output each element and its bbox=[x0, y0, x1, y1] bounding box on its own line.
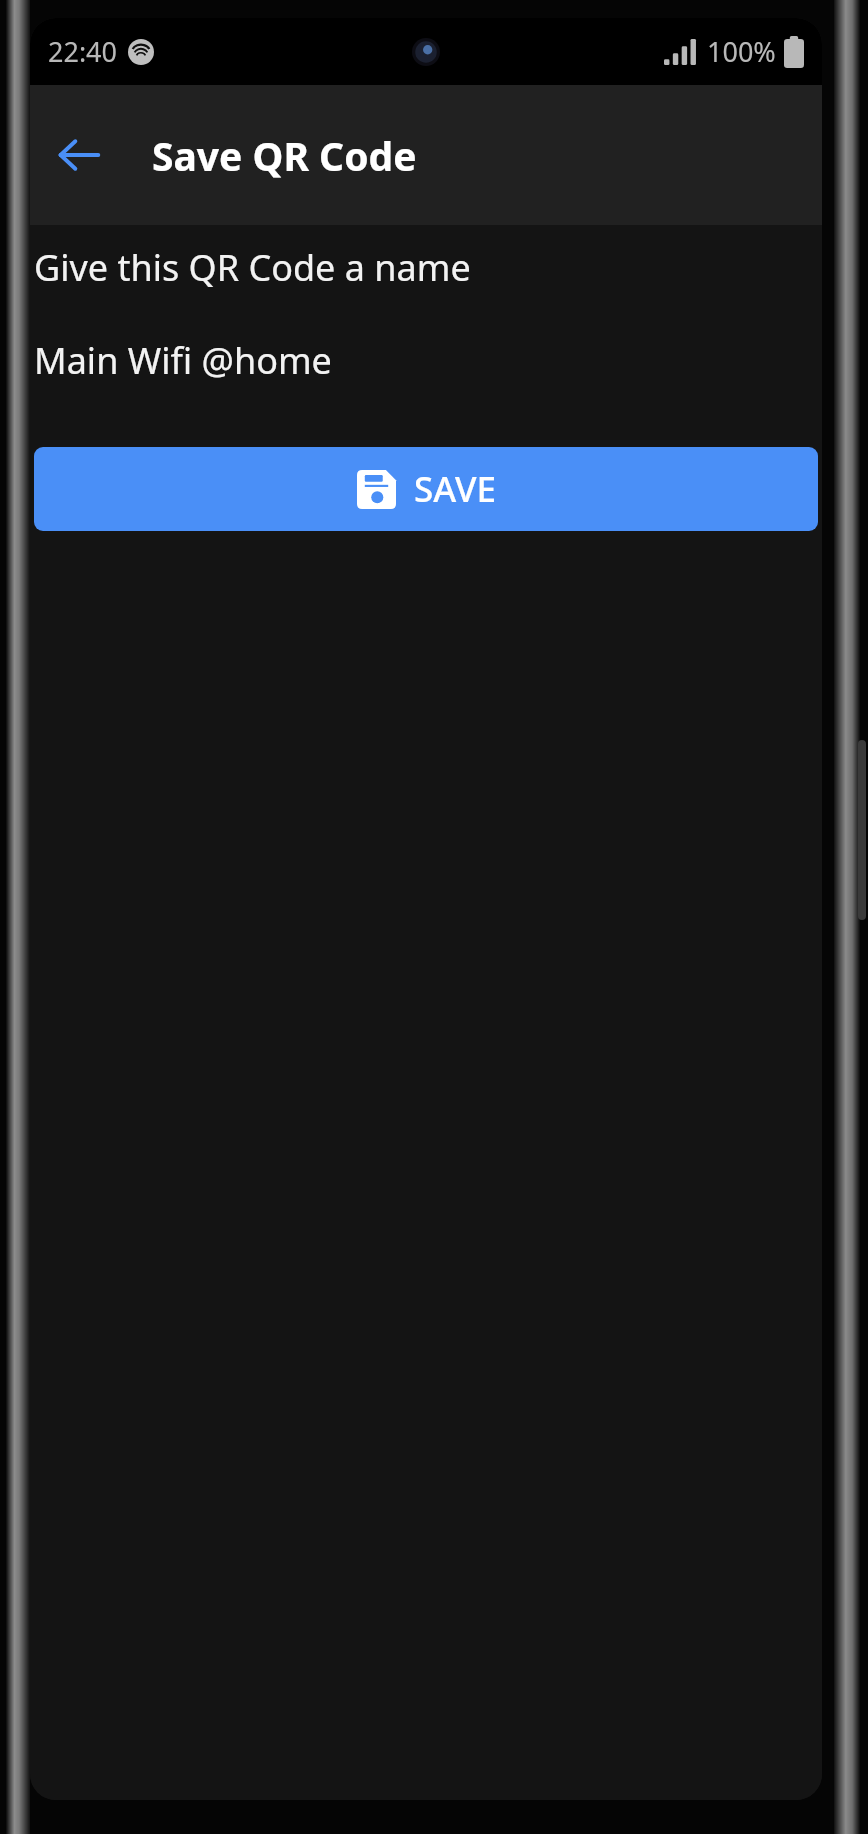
button[interactable]: SAVE bbox=[34, 447, 818, 531]
button[interactable]: Main Wifi @home bbox=[34, 336, 818, 385]
button[interactable]: Back bbox=[46, 122, 112, 188]
staticText: Give this QR Code a name bbox=[34, 243, 471, 292]
staticText: Save QR Code bbox=[152, 129, 417, 182]
staticText: 100% bbox=[707, 33, 776, 70]
staticText: 22:40 bbox=[48, 33, 118, 70]
staticText: Main Wifi @home bbox=[34, 336, 332, 385]
staticText: SAVE bbox=[414, 465, 496, 513]
